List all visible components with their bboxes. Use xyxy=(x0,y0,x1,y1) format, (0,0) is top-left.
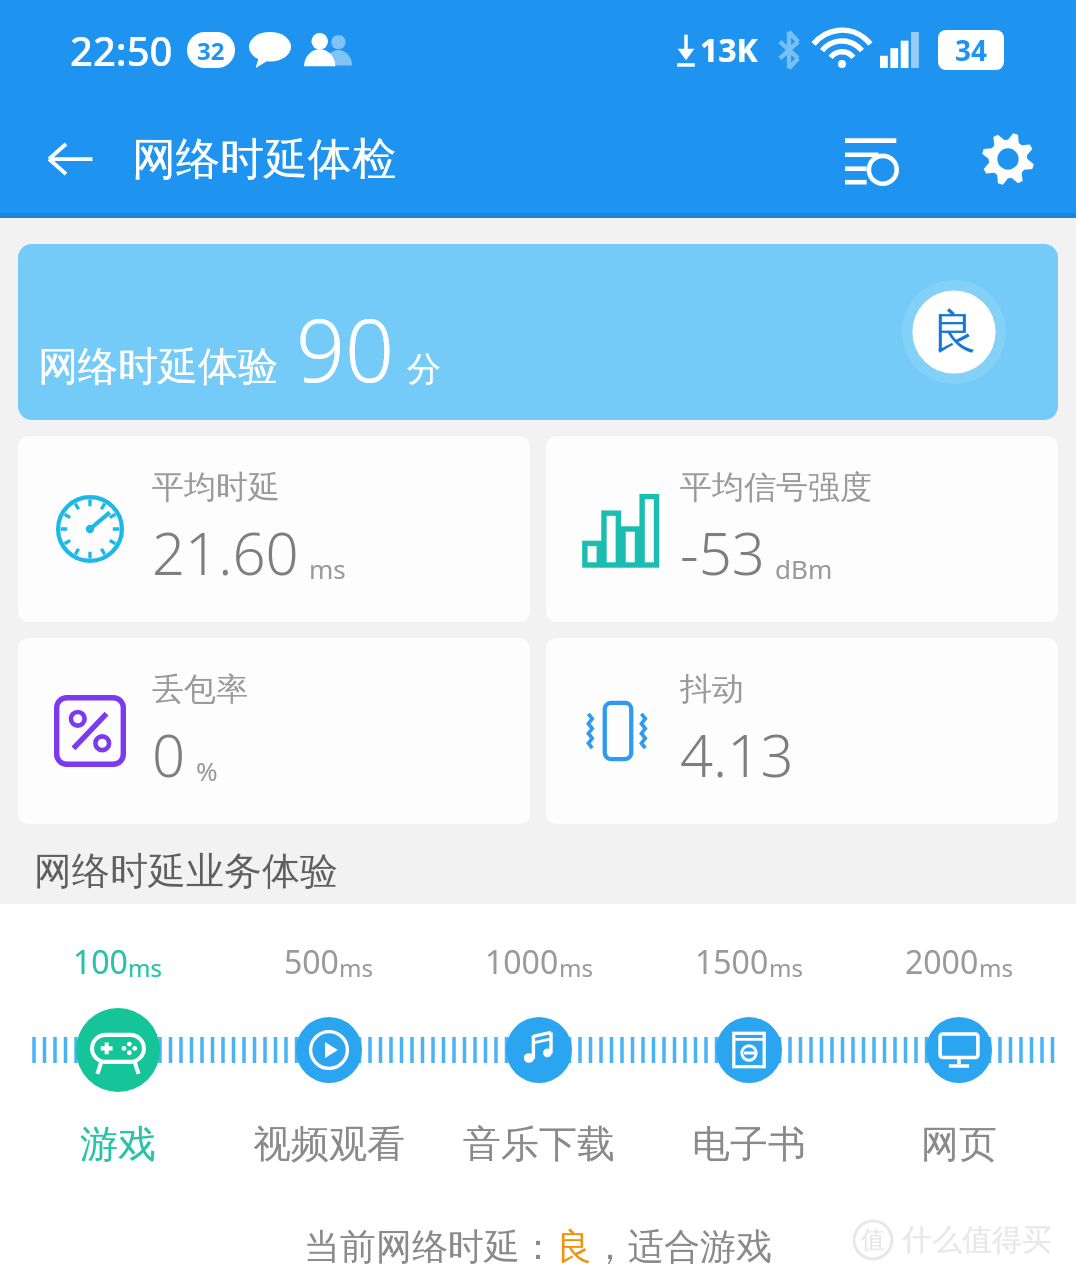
staticText: 1000 xyxy=(485,940,559,984)
staticText: 分 xyxy=(407,348,441,391)
staticText: 值 xyxy=(861,1225,885,1255)
staticText: 电子书 xyxy=(692,1120,806,1168)
staticText: ms xyxy=(128,951,162,984)
button[interactable]: 网络时延体验 xyxy=(18,244,1058,420)
button[interactable]: 网页 xyxy=(926,1017,992,1083)
button[interactable]: 抖动 xyxy=(546,638,1058,824)
staticText: 视频观看 xyxy=(253,1120,405,1168)
staticText: 90 xyxy=(296,290,395,407)
button[interactable]: 平均信号强度 xyxy=(546,436,1058,622)
staticText: 4.13 xyxy=(680,715,794,794)
button[interactable]: 平均时延 xyxy=(18,436,530,622)
staticText: 平均信号强度 xyxy=(680,467,872,507)
staticText: -53 xyxy=(680,513,765,592)
staticText: 13K xyxy=(700,28,758,72)
staticText: 网络时延体验 xyxy=(38,341,278,391)
staticText: 音乐下载 xyxy=(463,1120,615,1168)
staticText: 丢包率 xyxy=(152,669,248,709)
staticText: 2000 xyxy=(905,940,979,984)
other: 音乐下载 xyxy=(519,1030,559,1070)
staticText: 平均时延 xyxy=(152,467,280,507)
staticText: 100 xyxy=(73,940,128,984)
staticText: 1500 xyxy=(695,940,769,984)
button[interactable]: Back xyxy=(30,119,110,199)
staticText: 34 xyxy=(955,31,988,69)
staticText: 22:50 xyxy=(70,23,173,77)
staticText: 抖动 xyxy=(680,669,744,709)
button[interactable]: Settings xyxy=(966,117,1050,201)
staticText: 网络时延体检 xyxy=(132,132,396,187)
staticText: 0 xyxy=(152,715,186,794)
staticText: ms xyxy=(309,551,346,586)
button[interactable]: History xyxy=(830,117,914,201)
staticText: 网络时延业务体验 xyxy=(34,847,338,895)
staticText: 当前网络时延： xyxy=(304,1224,556,1269)
button[interactable]: 丢包率 xyxy=(18,638,530,824)
button[interactable]: 游戏 xyxy=(76,1008,160,1092)
button[interactable]: 电子书 xyxy=(716,1017,782,1083)
other: 视频观看 xyxy=(309,1030,349,1070)
other: 网页 xyxy=(938,1029,980,1071)
staticText: 网页 xyxy=(921,1120,997,1168)
staticText: ，适合游戏 xyxy=(592,1224,772,1269)
staticText: 什么值得买 xyxy=(902,1221,1052,1259)
staticText: 良 xyxy=(931,303,977,361)
staticText: 500 xyxy=(284,940,339,984)
staticText: ms xyxy=(979,951,1013,984)
staticText: 32 xyxy=(197,34,225,67)
staticText: dBm xyxy=(775,551,833,586)
button[interactable]: 音乐下载 xyxy=(506,1017,572,1083)
staticText: ms xyxy=(769,951,803,984)
staticText: ms xyxy=(339,951,373,984)
staticText: % xyxy=(196,753,218,788)
other: 电子书 xyxy=(730,1031,768,1069)
button[interactable]: 视频观看 xyxy=(296,1017,362,1083)
staticText: 良 xyxy=(556,1224,592,1269)
staticText: 21.60 xyxy=(152,513,299,592)
staticText: ms xyxy=(559,951,593,984)
staticText: 游戏 xyxy=(80,1120,156,1168)
